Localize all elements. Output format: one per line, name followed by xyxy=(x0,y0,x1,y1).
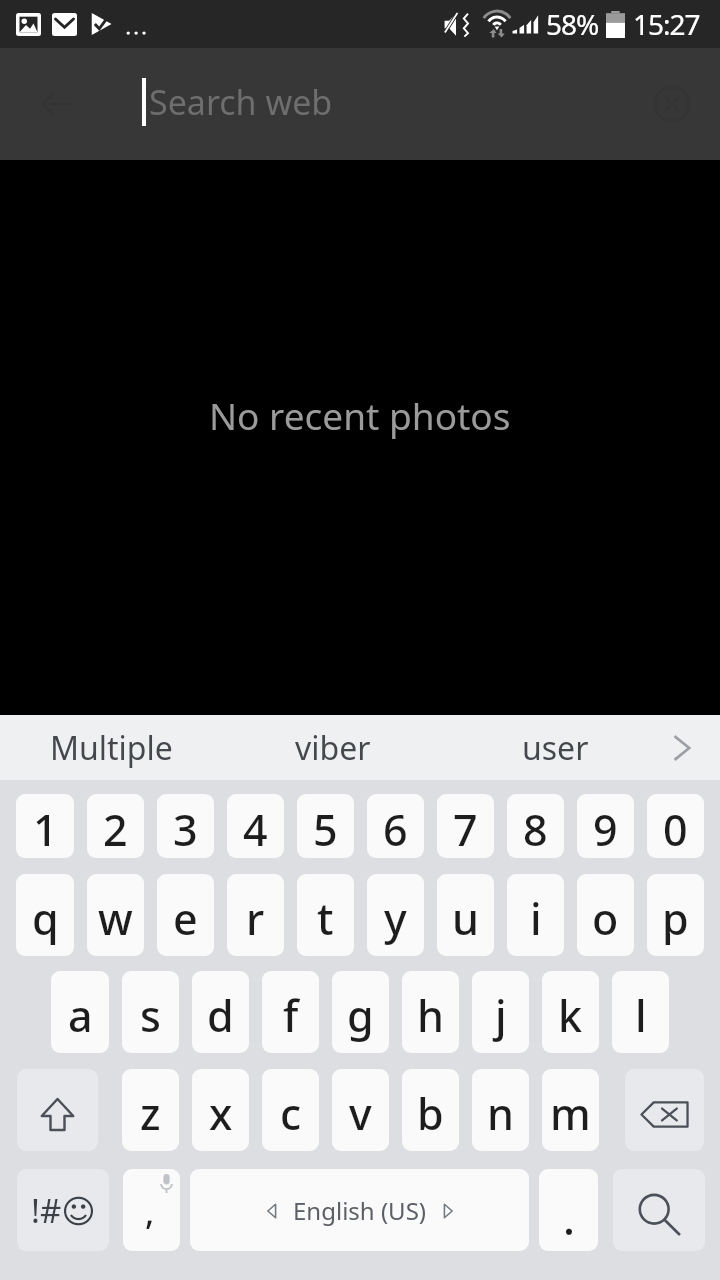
staticText: w xyxy=(98,889,133,948)
staticText: e xyxy=(173,889,198,948)
button[interactable]: l xyxy=(612,971,669,1053)
button[interactable]: 5 xyxy=(297,794,354,858)
staticText: 3 xyxy=(173,800,198,858)
button[interactable]: j xyxy=(472,971,529,1053)
staticText: g xyxy=(347,986,374,1045)
button[interactable]: e xyxy=(157,874,214,956)
button[interactable]: o xyxy=(577,874,634,956)
button[interactable]: n xyxy=(472,1069,529,1151)
staticText: 6 xyxy=(383,800,408,858)
staticText: 0 xyxy=(663,800,688,858)
staticText: p xyxy=(662,889,689,948)
button[interactable]: 0 xyxy=(647,794,704,858)
staticText: k xyxy=(558,986,583,1045)
button[interactable]: t xyxy=(297,874,354,956)
button[interactable]: Symbols xyxy=(17,1169,109,1251)
button[interactable]: Period xyxy=(539,1169,598,1251)
button[interactable]: Search xyxy=(613,1169,705,1251)
staticText: Search web xyxy=(149,79,333,125)
button[interactable]: w xyxy=(87,874,144,956)
staticText: 9 xyxy=(593,800,618,858)
button[interactable]: Comma xyxy=(123,1169,180,1251)
staticText: f xyxy=(283,986,299,1045)
staticText: m xyxy=(550,1084,591,1143)
button[interactable]: h xyxy=(402,971,459,1053)
staticText: 8 xyxy=(523,800,548,858)
button[interactable]: 7 xyxy=(437,794,494,858)
button[interactable]: v xyxy=(332,1069,389,1151)
button[interactable]: x xyxy=(192,1069,249,1151)
staticText: 1 xyxy=(33,800,58,858)
button[interactable]: u xyxy=(437,874,494,956)
staticText: c xyxy=(280,1084,302,1143)
staticText: English (US) xyxy=(293,1194,427,1227)
staticText: t xyxy=(317,889,334,948)
staticText: 7 xyxy=(453,800,478,858)
button[interactable]: 1 xyxy=(16,794,74,858)
staticText: r xyxy=(246,889,265,948)
staticText: 2 xyxy=(103,800,128,858)
button[interactable]: s xyxy=(122,971,179,1053)
staticText: x xyxy=(209,1084,233,1143)
button[interactable]: y xyxy=(367,874,424,956)
staticText: d xyxy=(207,986,234,1045)
button[interactable]: z xyxy=(122,1069,179,1151)
staticText: z xyxy=(140,1084,161,1143)
button[interactable]: viber xyxy=(222,715,444,780)
button[interactable]: 2 xyxy=(87,794,144,858)
button[interactable]: d xyxy=(192,971,249,1053)
button[interactable]: 8 xyxy=(507,794,564,858)
button[interactable]: 6 xyxy=(367,794,424,858)
staticText: viber xyxy=(295,726,371,770)
button[interactable]: a xyxy=(51,971,109,1053)
button[interactable]: f xyxy=(262,971,319,1053)
button[interactable]: k xyxy=(542,971,599,1053)
staticText: 58% xyxy=(546,5,599,43)
button[interactable]: c xyxy=(262,1069,319,1151)
staticText: , xyxy=(145,1189,155,1235)
button[interactable]: Multiple xyxy=(0,715,222,780)
staticText: q xyxy=(32,889,59,948)
button[interactable]: p xyxy=(647,874,704,956)
button[interactable]: r xyxy=(227,874,284,956)
staticText: 5 xyxy=(313,800,338,858)
staticText: o xyxy=(592,889,619,948)
staticText: b xyxy=(417,1084,444,1143)
button[interactable]: i xyxy=(507,874,564,956)
button[interactable]: user xyxy=(444,715,666,780)
button[interactable]: Space xyxy=(190,1169,529,1251)
button[interactable]: Shift xyxy=(17,1069,98,1151)
staticText: s xyxy=(140,986,161,1045)
button[interactable]: m xyxy=(542,1069,599,1151)
button[interactable]: 3 xyxy=(157,794,214,858)
staticText: v xyxy=(349,1084,372,1143)
staticText: . xyxy=(563,1188,575,1248)
button[interactable]: b xyxy=(402,1069,459,1151)
staticText: j xyxy=(495,986,507,1045)
button[interactable]: Backspace xyxy=(625,1069,704,1151)
staticText: Multiple xyxy=(50,726,173,770)
staticText: a xyxy=(68,986,93,1045)
staticText: u xyxy=(452,889,479,948)
staticText: n xyxy=(487,1084,514,1143)
button[interactable]: 4 xyxy=(227,794,284,858)
staticText: 4 xyxy=(243,800,268,858)
staticText: l xyxy=(635,986,647,1045)
staticText: 15:27 xyxy=(633,5,700,43)
staticText: h xyxy=(417,986,444,1045)
staticText: user xyxy=(522,726,589,770)
button[interactable]: 9 xyxy=(577,794,634,858)
staticText: i xyxy=(530,889,542,948)
button[interactable]: g xyxy=(332,971,389,1053)
staticText: No recent photos xyxy=(209,390,511,440)
button[interactable]: q xyxy=(16,874,74,956)
staticText: !#☺ xyxy=(31,1188,96,1233)
button[interactable]: More suggestions xyxy=(666,715,720,780)
staticText: y xyxy=(384,889,407,948)
